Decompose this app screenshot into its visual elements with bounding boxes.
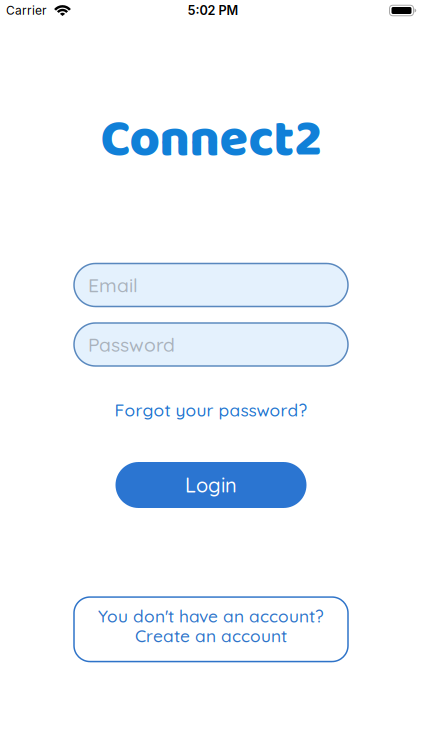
button[interactable]: Password [74, 323, 348, 366]
staticText: Forgot your password? [114, 399, 307, 421]
staticText: 5:02 PM [187, 3, 238, 18]
staticText: Create an account [135, 625, 287, 646]
staticText: Email [88, 273, 138, 297]
staticText: Carrier [6, 3, 47, 18]
staticText: Login [185, 472, 237, 497]
button[interactable]: Login [115, 462, 306, 508]
staticText: You don't have an account? [98, 605, 324, 627]
button[interactable]: Email [74, 263, 348, 306]
button[interactable]: You don't have an account? [74, 597, 348, 661]
button[interactable]: Forgot your password? [114, 399, 307, 421]
staticText: Password [88, 332, 175, 357]
staticText: Connect2 [100, 98, 321, 182]
